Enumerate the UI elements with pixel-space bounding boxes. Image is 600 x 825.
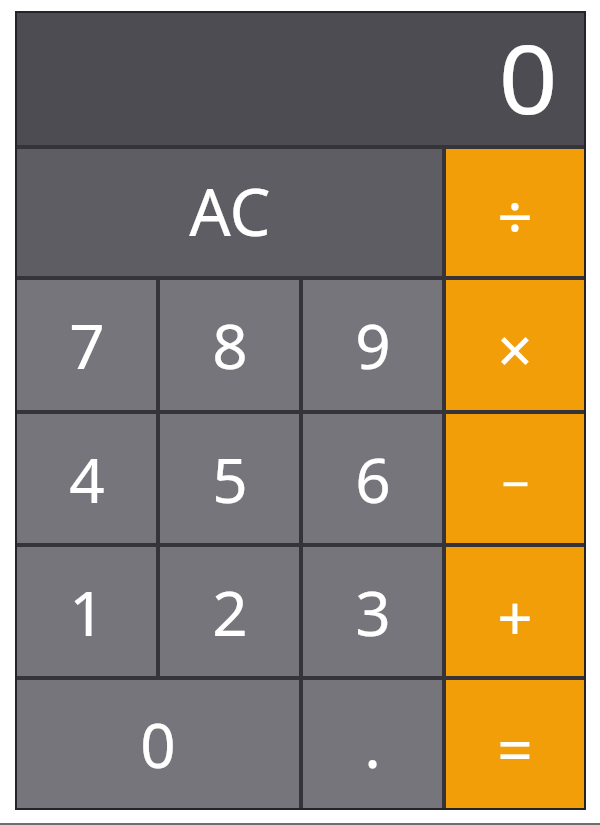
staticText: 6 (355, 437, 391, 521)
button[interactable]: 3 (303, 547, 442, 676)
button[interactable]: Add (446, 547, 584, 676)
button[interactable]: 7 (17, 280, 156, 410)
staticText: 0 (498, 12, 558, 141)
staticText: − (501, 449, 530, 517)
button[interactable]: Equals (446, 680, 584, 808)
staticText: 5 (212, 437, 248, 521)
button[interactable]: Result 0 (17, 13, 584, 145)
button[interactable]: 9 (303, 280, 442, 410)
staticText: 1 (69, 570, 105, 654)
button[interactable]: Decimal point (303, 680, 442, 808)
button[interactable]: 2 (160, 547, 299, 676)
button[interactable]: 0 (17, 680, 299, 808)
button[interactable]: 8 (160, 280, 299, 410)
button[interactable]: 4 (17, 414, 156, 543)
button[interactable]: 6 (303, 414, 442, 543)
staticText: + (497, 575, 533, 659)
staticText: 2 (212, 570, 248, 654)
staticText: 3 (355, 570, 391, 654)
staticText: ÷ (497, 174, 533, 258)
staticText: . (364, 702, 381, 786)
button[interactable]: Divide (446, 149, 584, 276)
staticText: 9 (355, 303, 391, 387)
staticText: 4 (69, 437, 105, 521)
button[interactable]: Subtract (446, 414, 584, 543)
button[interactable]: 1 (17, 547, 156, 676)
staticText: = (497, 707, 533, 791)
staticText: × (497, 307, 533, 391)
staticText: 0 (140, 702, 176, 786)
staticText: 8 (212, 303, 248, 387)
button[interactable]: 5 (160, 414, 299, 543)
button[interactable]: Multiply (446, 280, 584, 410)
button[interactable]: All clear (17, 149, 442, 276)
staticText: 7 (69, 303, 105, 387)
staticText: AC (189, 167, 271, 256)
